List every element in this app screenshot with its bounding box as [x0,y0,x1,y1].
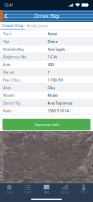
staticText: 12:41 [4,2,13,8]
staticText: Katman [61,191,70,194]
button[interactable]: Map [0,183,19,195]
button[interactable]: Layers [56,183,74,195]
staticText: Daire [47,39,57,44]
staticText: Nitelik [3,93,14,98]
staticText: Yeni Sayfa [47,46,64,52]
button[interactable]: Search [37,183,56,195]
staticText: Harita [6,191,13,194]
staticText: 1900 9 10:14 [47,108,68,113]
staticText: Kredi Listesi [27,23,48,28]
staticText: Tipi [3,39,9,44]
staticText: Mahalle/Köy [3,46,24,52]
staticText: Ana Taşınmaz [47,100,72,106]
staticText: Zemin Tip [3,100,20,106]
button[interactable]: Taşınmaz ekle [2,119,90,130]
button[interactable]: Detaylı Bilgi [0,22,25,30]
button[interactable]: Kredi Listesi [25,22,50,30]
staticText: Taşınmaz ekle [34,122,59,127]
staticText: Kodu [3,108,11,113]
staticText: 1 [47,69,49,75]
staticText: Parsel [3,69,14,75]
staticText: Konut [47,31,56,36]
staticText: Alan [3,85,11,90]
staticText: Parsel [24,191,32,194]
staticText: Pay / Ölçü [3,77,20,82]
staticText: Ara [44,191,48,194]
button[interactable]: Back [0,10,12,22]
button[interactable]: Profile [74,183,93,195]
staticText: Oku [47,85,54,90]
staticText: 1.Cilt [47,54,56,59]
staticText: Türü [3,31,11,36]
staticText: Profil [80,191,88,194]
staticText: 300 [47,62,53,67]
staticText: Mobil [47,93,57,98]
staticText: Detaylı Bilgi [2,23,23,28]
staticText: Bağımsız No [3,54,26,59]
staticText: Örnek Bilgi [34,12,59,20]
staticText: Ada [3,62,10,67]
staticText: 1.100 /10 [47,77,62,82]
button[interactable]: Parcel [19,183,37,195]
